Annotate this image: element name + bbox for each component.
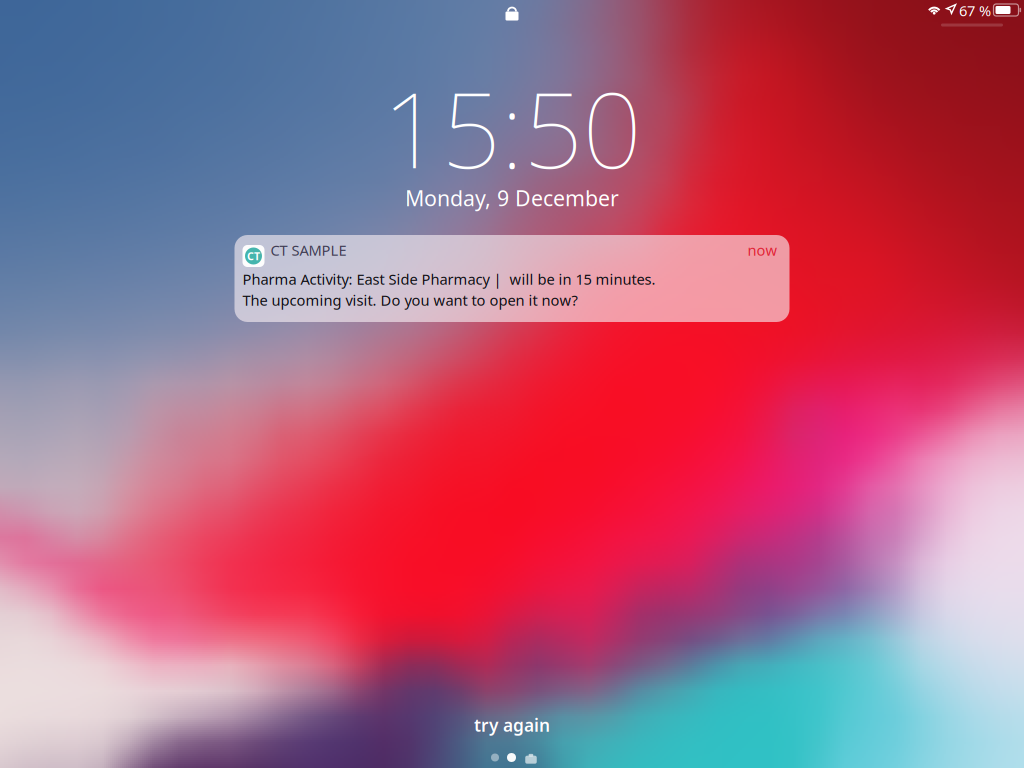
staticText: 67 % bbox=[959, 1, 991, 20]
staticText: CT SAMPLE bbox=[270, 240, 346, 260]
staticText: CT bbox=[247, 249, 260, 263]
button[interactable]: Camera bbox=[521, 748, 541, 766]
staticText: The upcoming visit. Do you want to open … bbox=[242, 290, 577, 310]
staticText: now bbox=[747, 240, 777, 260]
button[interactable]: Page 2 bbox=[504, 750, 518, 764]
button[interactable]: CT bbox=[234, 235, 789, 322]
staticText: Monday, 9 December bbox=[405, 184, 619, 212]
staticText: Pharma Activity: East Side Pharmacy | wi… bbox=[242, 269, 655, 289]
staticText: 15:50 bbox=[382, 59, 641, 197]
button[interactable]: try again bbox=[432, 714, 592, 736]
button[interactable]: Page 1 bbox=[488, 750, 502, 764]
staticText: try again bbox=[474, 713, 550, 736]
